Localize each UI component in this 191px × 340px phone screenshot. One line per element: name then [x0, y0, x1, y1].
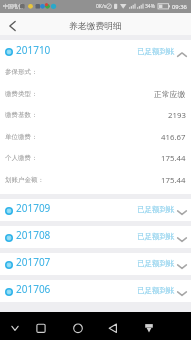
button[interactable]: 201709 — [0, 199, 191, 221]
staticText: 参保形式： — [5, 68, 38, 76]
staticText: 缴费基数： — [5, 111, 38, 119]
button[interactable]: 201706 — [0, 280, 191, 302]
button[interactable]: Dismiss keyboard — [137, 312, 161, 340]
staticText: 缴费类型： — [5, 90, 38, 98]
staticText: 已足额到账 — [137, 205, 175, 214]
staticText: 34% — [145, 3, 155, 10]
staticText: 中国电信 — [3, 3, 23, 9]
staticText: 单位缴费： — [5, 133, 38, 141]
staticText: 09:36 — [172, 3, 187, 11]
staticText: 175.44 — [161, 153, 186, 164]
staticText: 175.44 — [161, 175, 186, 186]
staticText: 已足额到账 — [137, 232, 175, 241]
button[interactable]: Home — [66, 312, 90, 340]
staticText: 201706 — [16, 282, 51, 296]
staticText: 已足额到账 — [137, 286, 175, 295]
staticText: 养老缴费明细 — [69, 21, 122, 32]
button[interactable]: 201710 — [0, 40, 191, 62]
staticText: 416.67 — [161, 132, 186, 143]
staticText: 201709 — [16, 201, 51, 215]
staticText: 201708 — [16, 228, 51, 242]
staticText: 2193 — [168, 110, 186, 121]
button[interactable]: Hide keyboard — [3, 312, 27, 340]
button[interactable]: 201707 — [0, 253, 191, 275]
button[interactable]: Recent apps — [29, 312, 53, 340]
staticText: 已足额到账 — [137, 47, 175, 56]
staticText: 0K/s — [96, 3, 107, 10]
staticText: 正常应缴 — [154, 89, 186, 99]
button[interactable]: Back — [0, 13, 25, 35]
button[interactable]: 201708 — [0, 226, 191, 248]
staticText: 201707 — [16, 255, 51, 269]
staticText: 已足额到账 — [137, 259, 175, 268]
button[interactable]: Back — [101, 312, 125, 340]
staticText: 个人缴费： — [5, 154, 38, 162]
staticText: 划账户金额： — [5, 176, 44, 184]
staticText: 201710 — [16, 43, 51, 57]
